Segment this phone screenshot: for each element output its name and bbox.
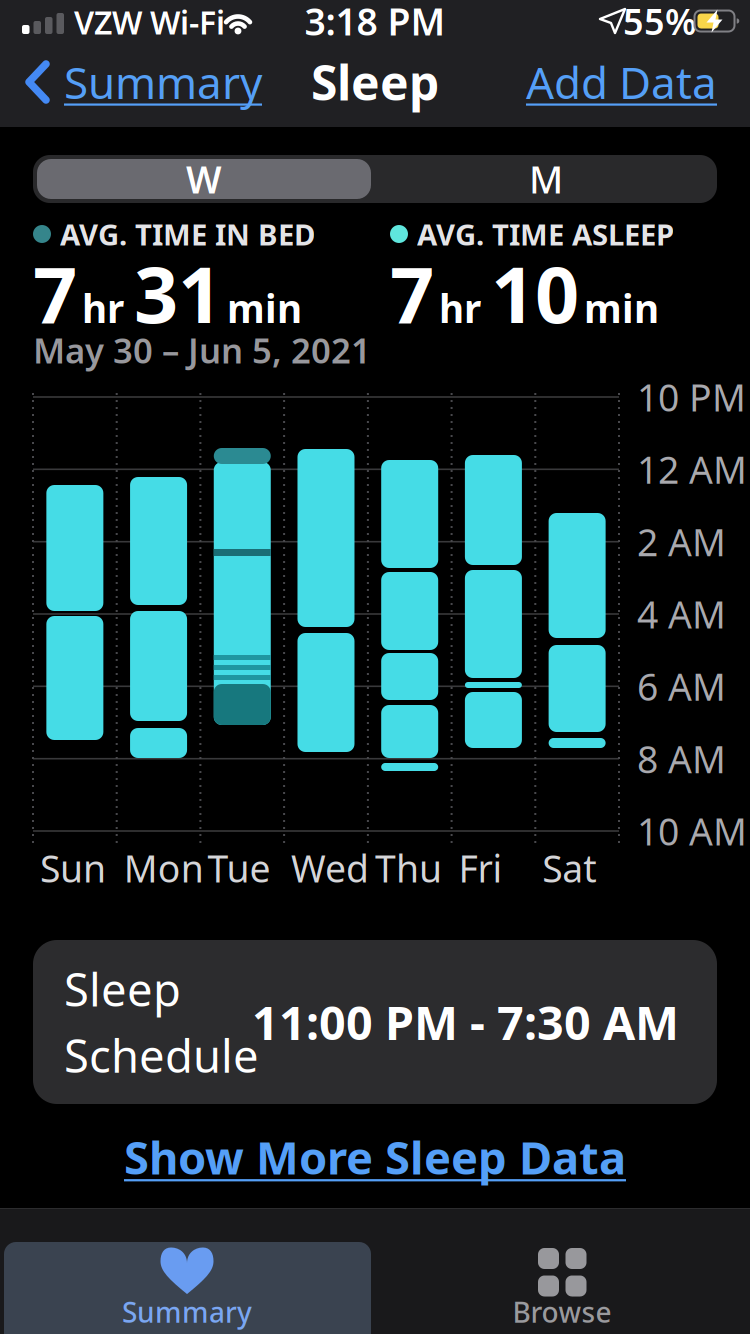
staticText: 3:18 PM	[304, 0, 445, 46]
staticText: 10 AM	[637, 806, 747, 856]
staticText: 8 AM	[637, 734, 726, 783]
staticText: Sat	[542, 843, 596, 893]
staticText: 11:00 PM - 7:30 AM	[252, 991, 679, 1053]
staticText: 31	[134, 242, 222, 344]
staticText: AVG. TIME ASLEEP	[417, 214, 674, 253]
staticText: Sun	[40, 843, 106, 893]
button[interactable]: Sleep Schedule	[33, 940, 717, 1104]
button[interactable]: W	[37, 159, 371, 199]
staticText: Sleep	[311, 50, 439, 114]
staticText: hr	[439, 282, 481, 334]
staticText: Mon	[124, 843, 204, 893]
staticText: Thu	[375, 843, 442, 893]
staticText: 55%	[623, 0, 697, 45]
staticText: VZW Wi-Fi	[74, 1, 225, 43]
button[interactable]: Summary	[26, 60, 296, 104]
staticText: 2 AM	[637, 517, 726, 566]
staticText: AVG. TIME IN BED	[60, 214, 315, 253]
staticText: M	[529, 154, 563, 204]
staticText: Summary	[64, 53, 262, 111]
staticText: 6 AM	[637, 661, 726, 711]
button[interactable]: Summary	[4, 1242, 371, 1334]
staticText: 4 AM	[637, 589, 726, 639]
staticText: Sleep Schedule	[64, 959, 259, 1085]
staticText: min	[227, 282, 302, 334]
staticText: Show More Sleep Data	[124, 1127, 626, 1187]
staticText: Tue	[207, 843, 270, 893]
staticText: hr	[82, 282, 124, 334]
staticText: Wed	[291, 843, 369, 893]
staticText: Add Data	[526, 53, 717, 111]
staticText: Browse	[512, 1293, 611, 1331]
staticText: min	[584, 282, 659, 334]
staticText: 10 PM	[637, 372, 746, 422]
button[interactable]: M	[379, 159, 713, 199]
staticText: May 30 – Jun 5, 2021	[33, 327, 371, 373]
staticText: Fri	[459, 843, 503, 893]
staticText: 7	[390, 242, 434, 344]
staticText: 10	[491, 242, 579, 344]
button[interactable]: Browse	[502, 1242, 622, 1334]
staticText: Summary	[122, 1293, 252, 1331]
button[interactable]: Add Data	[497, 53, 717, 111]
staticText: 7	[33, 242, 77, 344]
staticText: 12 AM	[637, 444, 747, 494]
staticText: W	[186, 154, 222, 204]
button[interactable]: Show More Sleep Data	[124, 1127, 626, 1187]
